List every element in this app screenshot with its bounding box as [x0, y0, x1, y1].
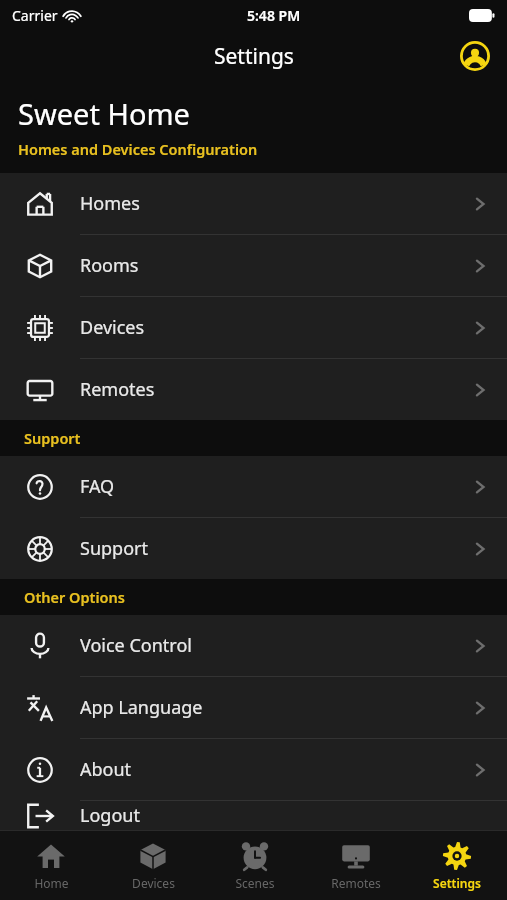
staticText: Other Options [24, 587, 125, 607]
staticText: Voice Control [80, 633, 192, 658]
staticText: Support [80, 536, 148, 561]
button[interactable]: Scenes [204, 831, 305, 900]
staticText: Rooms [80, 253, 139, 278]
staticText: Scenes [235, 875, 275, 891]
staticText: Devices [132, 875, 175, 891]
staticText: Remotes [331, 875, 381, 891]
staticText: Homes and Devices Configuration [18, 139, 258, 159]
button[interactable]: Remotes [305, 831, 406, 900]
staticText: Remotes [80, 377, 155, 402]
button[interactable]: Home [0, 831, 102, 900]
staticText: About [80, 757, 132, 782]
button[interactable]: App Language [0, 677, 507, 738]
button[interactable]: Remotes [0, 359, 507, 420]
button[interactable]: Voice Control [0, 615, 507, 676]
staticText: Settings [214, 42, 294, 71]
staticText: FAQ [80, 474, 115, 499]
button[interactable]: Support [0, 518, 507, 579]
button[interactable]: FAQ [0, 456, 507, 517]
staticText: Carrier [12, 6, 58, 25]
button[interactable]: Settings [406, 831, 507, 900]
staticText: App Language [80, 695, 203, 720]
staticText: Logout [80, 803, 140, 828]
staticText: Support [24, 428, 81, 448]
button[interactable]: Logout [0, 801, 507, 830]
button[interactable]: Homes [0, 173, 507, 234]
staticText: Home [34, 875, 69, 891]
button[interactable]: About [0, 739, 507, 800]
button[interactable]: Devices [0, 297, 507, 358]
button[interactable]: Rooms [0, 235, 507, 296]
staticText: 5:48 PM [247, 6, 301, 25]
staticText: Homes [80, 191, 140, 216]
button[interactable]: Devices [102, 831, 204, 900]
staticText: Devices [80, 315, 145, 340]
staticText: Settings [433, 875, 481, 891]
staticText: Sweet Home [18, 94, 190, 133]
button[interactable]: Profile [455, 36, 495, 76]
